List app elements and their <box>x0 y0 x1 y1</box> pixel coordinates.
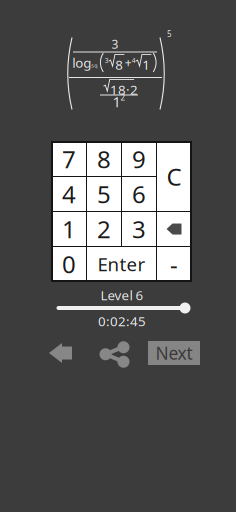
button[interactable]: Back <box>38 335 82 371</box>
staticText: + <box>125 54 132 70</box>
staticText: Next <box>155 341 192 364</box>
staticText: 9 <box>132 143 146 175</box>
staticText: 8 <box>97 143 111 175</box>
button[interactable]: Backspace <box>157 212 191 246</box>
staticText: 7 <box>62 143 76 175</box>
button[interactable]: 9 <box>122 142 156 176</box>
staticText: 5 <box>97 178 111 210</box>
staticText: log <box>72 54 91 71</box>
button[interactable]: C <box>157 142 191 211</box>
button[interactable]: 0 <box>52 247 86 281</box>
staticText: Enter <box>97 252 145 276</box>
staticText: 18·2 <box>110 81 138 98</box>
button[interactable]: Share <box>91 337 137 373</box>
staticText: 1 <box>142 56 150 73</box>
staticText: 0 <box>62 248 76 280</box>
staticText: 6 <box>132 178 146 210</box>
staticText: C <box>166 161 181 192</box>
staticText: 1 <box>112 92 120 111</box>
button[interactable]: Level slider <box>55 302 189 314</box>
staticText: 8 <box>115 56 123 73</box>
staticText: 0:02:45 <box>98 312 146 330</box>
staticText: 4 <box>132 56 136 65</box>
button[interactable]: Enter <box>87 247 156 281</box>
staticText: 2 <box>120 92 125 103</box>
staticText: 3 <box>132 213 146 245</box>
button[interactable]: - <box>157 247 191 281</box>
staticText: 1 <box>62 213 76 245</box>
button[interactable]: 4 <box>52 177 86 211</box>
staticText: 2 <box>97 213 111 245</box>
button[interactable]: 6 <box>122 177 156 211</box>
staticText: 3 <box>105 56 109 65</box>
staticText: Level 6 <box>100 286 143 304</box>
staticText: 4 <box>62 178 76 210</box>
staticText: sq <box>91 62 97 69</box>
staticText: 3 <box>111 36 118 52</box>
staticText: - <box>170 248 178 280</box>
button[interactable]: 2 <box>87 212 121 246</box>
button[interactable]: 5 <box>87 177 121 211</box>
staticText: 5 <box>167 29 172 39</box>
button[interactable]: 1 <box>52 212 86 246</box>
button[interactable]: 3 <box>122 212 156 246</box>
button[interactable]: 8 <box>87 142 121 176</box>
button[interactable]: Next <box>148 341 200 365</box>
button[interactable]: 7 <box>52 142 86 176</box>
